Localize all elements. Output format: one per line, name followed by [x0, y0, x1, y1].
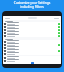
- button[interactable]: Toggle: [3, 28, 61, 31]
- button[interactable]: [3, 40, 61, 43]
- button[interactable]: Toggle: [58, 32, 60, 34]
- button[interactable]: Apply: [31, 62, 34, 64]
- button[interactable]: Toggle: [58, 29, 60, 31]
- button[interactable]: [3, 56, 61, 59]
- button[interactable]: Toggle: [58, 50, 60, 52]
- button[interactable]: Toggle: [3, 34, 61, 37]
- staticText: Customize your Settings: [2, 1, 62, 5]
- button[interactable]: Toggle: [58, 26, 60, 28]
- button[interactable]: [3, 46, 61, 49]
- button[interactable]: Toggle: [58, 23, 60, 25]
- staticText: including Filters: [2, 5, 62, 9]
- button[interactable]: [3, 52, 61, 55]
- button[interactable]: Toggle: [3, 43, 61, 46]
- button[interactable]: Toggle: [58, 44, 60, 46]
- button[interactable]: Toggle: [3, 49, 61, 52]
- button[interactable]: Toggle: [58, 35, 60, 37]
- button[interactable]: [3, 59, 61, 62]
- button[interactable]: Toggle: [3, 31, 61, 34]
- button[interactable]: Toggle: [3, 25, 61, 28]
- button[interactable]: Toggle: [3, 22, 61, 25]
